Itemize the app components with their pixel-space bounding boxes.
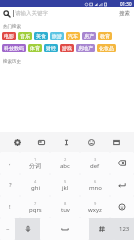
staticText: 9 xyxy=(94,201,97,206)
staticText: 3 xyxy=(94,157,97,162)
staticText: pqrs xyxy=(29,206,42,214)
staticText: 搜索 xyxy=(119,10,130,17)
button[interactable]: 9 xyxy=(80,196,110,218)
staticText: 请输入关键字 xyxy=(15,10,48,17)
button[interactable]: ~ xyxy=(0,218,15,240)
staticText: def xyxy=(90,162,100,170)
button[interactable]: backspace xyxy=(110,152,134,174)
button[interactable]: Keyboard layout xyxy=(104,132,129,152)
button[interactable]: 123 xyxy=(114,218,134,240)
button[interactable]: 美食 xyxy=(34,32,48,40)
staticText: jkl xyxy=(62,184,69,192)
staticText: 分词 xyxy=(29,162,41,170)
button[interactable]: enter xyxy=(110,174,134,196)
staticText: 旅游 xyxy=(52,33,62,39)
button[interactable]: 游戏 xyxy=(60,44,74,52)
other: Search xyxy=(3,10,11,18)
staticText: 搜索历史 xyxy=(3,59,21,65)
button[interactable]: 旅游 xyxy=(50,32,64,40)
button[interactable]: 教育 xyxy=(98,32,112,40)
button[interactable]: 房产 xyxy=(82,32,96,40)
button[interactable]: 7 xyxy=(20,196,50,218)
staticText: 美食 xyxy=(36,33,46,39)
button[interactable]: 电影 xyxy=(2,32,16,40)
staticText: wxyz xyxy=(88,206,102,214)
button[interactable]: ! xyxy=(0,196,20,218)
staticText: 热门搜索 xyxy=(3,24,21,30)
button[interactable]: grid xyxy=(89,218,114,240)
button[interactable]: 音乐 xyxy=(18,32,32,40)
button[interactable]: 化妆品 xyxy=(97,44,116,52)
staticText: abc xyxy=(60,162,70,170)
staticText: 汽车 xyxy=(68,33,78,39)
staticText: ! xyxy=(9,203,11,211)
staticText: 科技数码 xyxy=(4,45,24,51)
staticText: 体育 xyxy=(30,45,40,51)
button[interactable]: 体育 xyxy=(28,44,42,52)
staticText: 化妆品 xyxy=(99,45,114,51)
staticText: 2 xyxy=(64,157,67,162)
staticText: 01:30 xyxy=(120,1,132,7)
staticText: 教育 xyxy=(100,33,110,39)
staticText: tuv xyxy=(61,206,70,214)
button[interactable]: ? xyxy=(0,174,20,196)
button[interactable]: 6 xyxy=(80,174,110,196)
button[interactable]: 科技数码 xyxy=(2,44,26,52)
staticText: 5 xyxy=(64,179,67,184)
button[interactable]: 财经 xyxy=(44,44,58,52)
staticText: 123 xyxy=(119,225,130,233)
button[interactable]: 房地产 xyxy=(76,44,95,52)
button[interactable]: 8 xyxy=(50,196,80,218)
staticText: 财经 xyxy=(46,45,56,51)
button[interactable]: 4 xyxy=(20,174,50,196)
staticText: , xyxy=(9,159,11,167)
staticText: 房产 xyxy=(84,33,94,39)
button[interactable]: 汽车 xyxy=(66,32,80,40)
staticText: 7 xyxy=(34,201,37,206)
staticText: 房地产 xyxy=(78,45,93,51)
staticText: 4 xyxy=(34,179,37,184)
button[interactable]: , xyxy=(0,152,20,174)
staticText: mno xyxy=(89,184,102,192)
button[interactable]: 搜索 xyxy=(118,8,131,19)
button[interactable]: Clipboard xyxy=(29,132,54,152)
button[interactable]: 5 xyxy=(50,174,80,196)
staticText: 音乐 xyxy=(20,33,30,39)
button[interactable]: Settings xyxy=(5,132,29,152)
staticText: 1 xyxy=(34,157,37,162)
button[interactable]: 1 xyxy=(20,152,50,174)
staticText: 8 xyxy=(64,201,67,206)
button[interactable]: smile xyxy=(110,196,134,218)
button[interactable]: Emoji xyxy=(79,132,104,152)
staticText: ghi xyxy=(31,184,40,192)
staticText: 6 xyxy=(94,179,97,184)
button[interactable]: 3 xyxy=(80,152,110,174)
button[interactable]: mic xyxy=(15,218,40,240)
button[interactable]: 2 xyxy=(50,152,80,174)
staticText: 电影 xyxy=(4,33,14,39)
button[interactable]: space xyxy=(40,218,89,240)
staticText: ~ xyxy=(6,225,10,233)
staticText: ? xyxy=(9,181,12,189)
button[interactable]: Text input xyxy=(54,132,79,152)
staticText: 游戏 xyxy=(62,45,72,51)
